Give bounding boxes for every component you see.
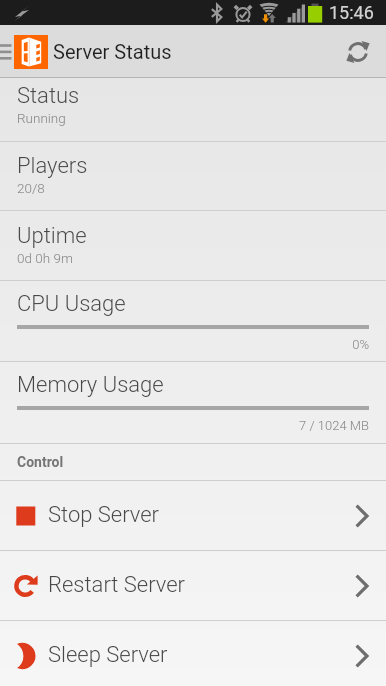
button[interactable]: Sleep Server bbox=[0, 621, 386, 686]
staticText: Sleep Server bbox=[48, 642, 168, 668]
staticText: 15:46 bbox=[329, 2, 374, 23]
button[interactable]: Players bbox=[0, 142, 386, 210]
staticText: Players bbox=[17, 153, 88, 179]
staticText: Uptime bbox=[17, 223, 87, 249]
button[interactable]: CPU Usage bbox=[0, 281, 386, 361]
staticText: 0% bbox=[17, 337, 369, 352]
button[interactable]: Stop Server bbox=[0, 481, 386, 550]
staticText: Running bbox=[17, 110, 66, 126]
button[interactable]: Status bbox=[0, 78, 386, 141]
staticText: Stop Server bbox=[48, 502, 160, 528]
button[interactable]: Uptime bbox=[0, 211, 386, 280]
staticText: Status bbox=[17, 83, 80, 109]
staticText: Server Status bbox=[53, 40, 172, 63]
staticText: Memory Usage bbox=[17, 372, 164, 398]
staticText: 7 / 1024 MB bbox=[17, 418, 369, 433]
staticText: 0d 0h 9m bbox=[17, 250, 73, 266]
staticText: 20/8 bbox=[17, 180, 45, 196]
button[interactable]: Memory Usage bbox=[0, 362, 386, 443]
button[interactable]: Restart Server bbox=[0, 551, 386, 620]
staticText: Control bbox=[17, 454, 64, 470]
staticText: Restart Server bbox=[48, 572, 186, 598]
button[interactable]: Refresh bbox=[330, 25, 386, 78]
staticText: CPU Usage bbox=[17, 291, 126, 317]
